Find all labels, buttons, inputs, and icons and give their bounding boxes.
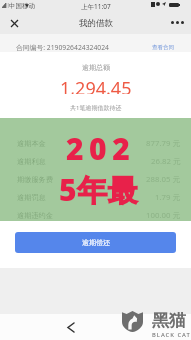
- button[interactable]: Back: [61, 318, 80, 337]
- staticText: 合同编号: 2190926424324024: [16, 43, 109, 52]
- staticText: 26.82 元: [151, 156, 181, 167]
- staticText: 逾期利息: [17, 157, 46, 166]
- staticText: 逾期总额: [82, 63, 110, 72]
- staticText: 1.79 元: [155, 192, 181, 203]
- button[interactable]: 查看合同: [152, 44, 174, 51]
- staticText: 中国移动: [9, 2, 35, 10]
- staticText: 202: [66, 128, 136, 169]
- staticText: 逾期偿还: [82, 238, 110, 247]
- staticText: 5年最: [59, 169, 139, 210]
- staticText: 上午11:07: [81, 2, 111, 11]
- button[interactable]: More options: [166, 11, 188, 35]
- staticText: 我的借款: [79, 18, 113, 29]
- staticText: 期缴服务费: [17, 175, 53, 184]
- staticText: 逾期罚息: [17, 193, 46, 202]
- staticText: 1,294.45: [60, 76, 132, 94]
- staticText: 逾期本金: [17, 139, 46, 148]
- staticText: 逾期违约金: [17, 211, 53, 220]
- button[interactable]: 逾期偿还: [15, 232, 176, 253]
- staticText: 共1笔逾期借款待还: [70, 104, 122, 112]
- staticText: 100.00 元: [146, 210, 181, 221]
- button[interactable]: Close: [5, 11, 24, 35]
- staticText: 877.79 元: [146, 138, 181, 149]
- staticText: BLACK CAT: [152, 331, 191, 339]
- staticText: 黑猫: [152, 310, 186, 331]
- staticText: 288.05 元: [146, 174, 181, 185]
